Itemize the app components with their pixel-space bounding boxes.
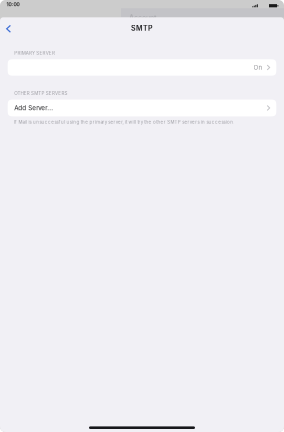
staticText: SMTP (131, 24, 153, 32)
staticText: OTHER SMTP SERVERS (14, 90, 67, 96)
staticText: If Mail is unsuccessful using the primar… (14, 119, 234, 125)
staticText: 10:00 (6, 2, 19, 8)
staticText: Account (129, 14, 156, 22)
staticText: PRIMARY SERVER (14, 50, 55, 56)
button[interactable]: Primary server, On (8, 59, 276, 76)
staticText: On (254, 64, 263, 71)
button[interactable]: Add Server... (8, 100, 276, 116)
button[interactable]: Back (0, 18, 17, 39)
staticText: Add Server... (14, 104, 53, 112)
